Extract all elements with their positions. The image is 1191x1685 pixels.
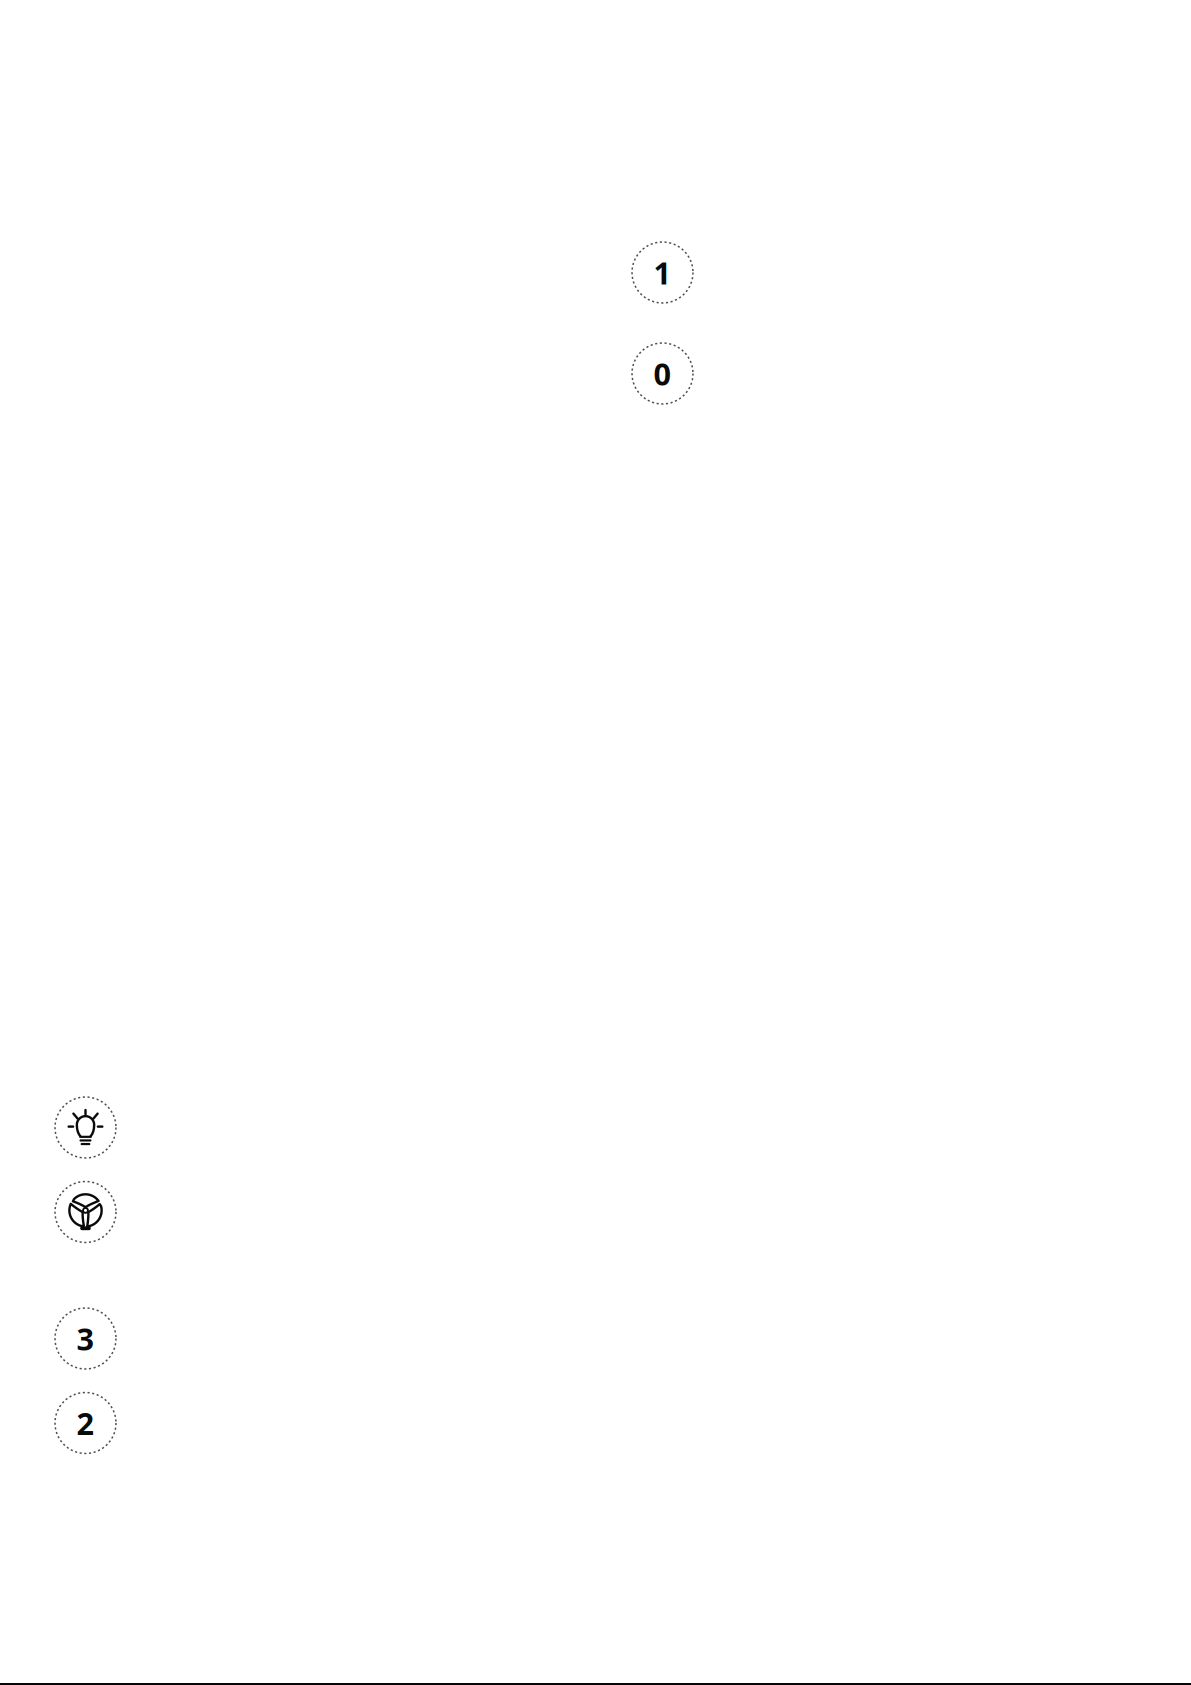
button[interactable]: Brightness steps, 1 <box>0 222 1191 323</box>
staticText: 0 <box>653 353 671 394</box>
staticText: 3 <box>76 1318 94 1359</box>
button[interactable]: Fan speed, step 3 <box>0 1296 1191 1381</box>
button[interactable]: Ceiling Fan, On, Medium <box>0 1170 1191 1254</box>
button[interactable]: Scenes running, 0 <box>0 323 1191 424</box>
button[interactable]: Ceiling Light, On, 60 percent <box>0 1085 1191 1170</box>
staticText: 2 <box>76 1403 94 1443</box>
button[interactable]: Light scenes, step 2 <box>0 1381 1191 1465</box>
staticText: 1 <box>653 252 671 293</box>
